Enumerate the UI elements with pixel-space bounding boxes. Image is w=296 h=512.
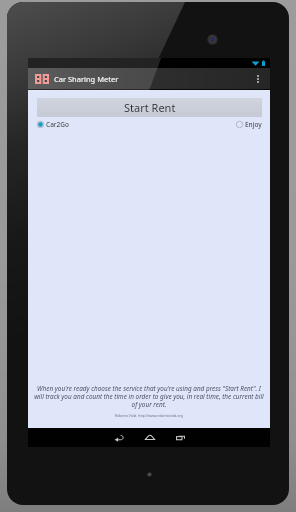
staticText: Enjoy — [245, 120, 262, 129]
button[interactable]: Home — [134, 428, 165, 447]
button[interactable]: More options — [248, 68, 268, 90]
staticText: Car Sharing Meter — [54, 74, 119, 84]
button[interactable]: Car2Go — [36, 120, 70, 129]
staticText: Start Rent — [124, 100, 176, 115]
staticText: Car2Go — [46, 120, 70, 129]
button[interactable]: Start Rent — [37, 98, 262, 117]
button[interactable]: Enjoy — [235, 120, 262, 129]
staticText: When you're ready choose the service tha… — [34, 384, 264, 409]
button[interactable]: Recent apps — [165, 428, 196, 447]
staticText: Roberto Viola http://www.robertoviola.or… — [115, 413, 183, 418]
button[interactable]: Back — [103, 428, 134, 447]
